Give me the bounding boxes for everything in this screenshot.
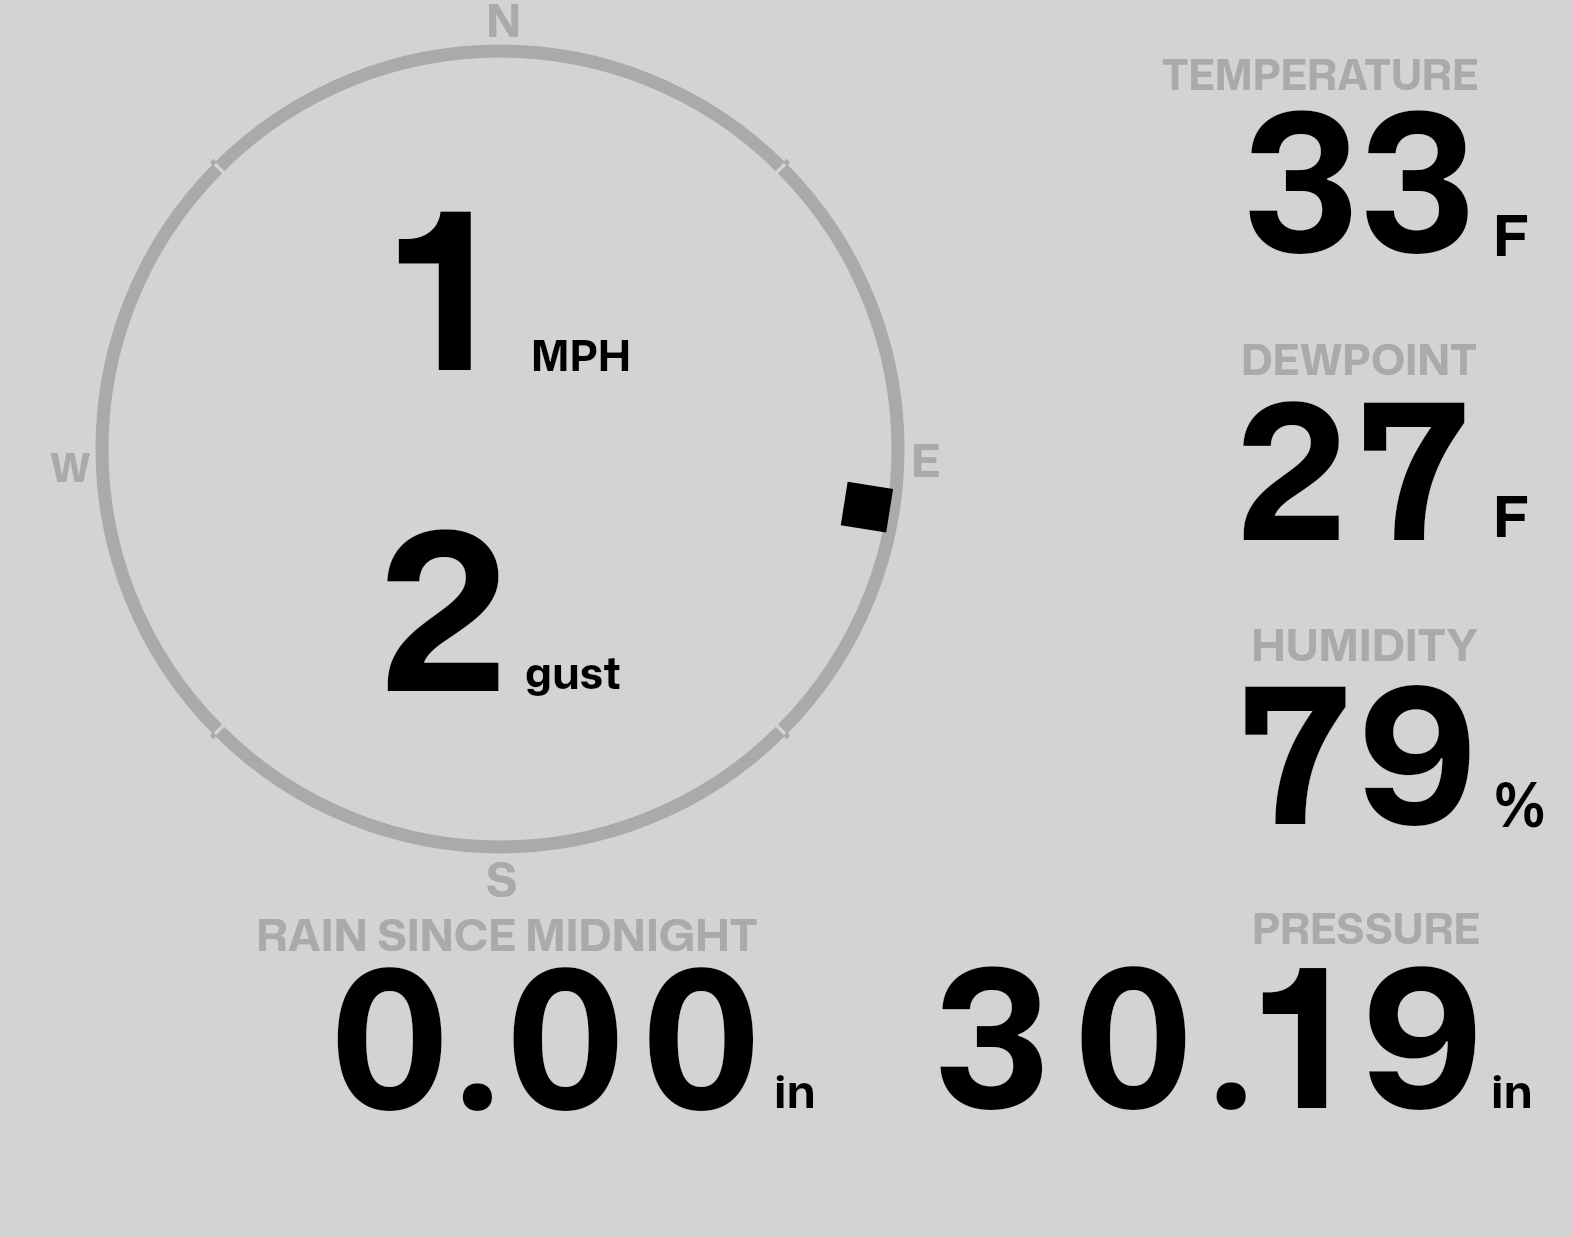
staticText: F <box>1493 194 1529 274</box>
staticText: 0.00 <box>330 899 773 1171</box>
staticText: 30.19 <box>935 898 1506 1170</box>
staticText: % <box>1493 759 1547 846</box>
button[interactable]: Wind direction dial <box>95 44 905 854</box>
staticText: DEWPOINT <box>1241 329 1477 388</box>
button[interactable]: Humidity 79 percent <box>1150 600 1565 850</box>
staticText: W <box>50 438 91 494</box>
staticText: 27 <box>1237 333 1478 601</box>
staticText: N <box>486 0 522 51</box>
button[interactable]: Dewpoint 27 F <box>1150 315 1565 565</box>
staticText: in <box>1491 1058 1533 1123</box>
staticText: F <box>1493 475 1529 555</box>
staticText: MPH <box>531 325 631 384</box>
button[interactable]: Pressure 30.19 in <box>900 890 1560 1125</box>
button[interactable]: Temperature 33 F <box>1150 30 1565 280</box>
staticText: 2 <box>380 450 508 762</box>
staticText: 33 <box>1244 42 1475 314</box>
staticText: PRESSURE <box>1252 899 1481 958</box>
staticText: HUMIDITY <box>1251 613 1479 675</box>
staticText: in <box>774 1058 816 1123</box>
staticText: E <box>911 427 941 492</box>
staticText: S <box>486 846 518 912</box>
staticText: gust <box>525 641 622 703</box>
staticText: TEMPERATURE <box>1162 45 1479 104</box>
staticText: RAIN SINCE MIDNIGHT <box>256 903 758 965</box>
staticText: 1 <box>394 131 486 440</box>
button[interactable]: Rain since midnight 0.00 in <box>240 890 840 1125</box>
staticText: 79 <box>1239 617 1486 885</box>
